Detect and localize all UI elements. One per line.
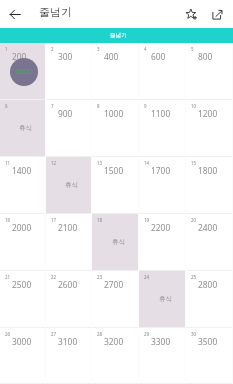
staticText: 12 <box>51 160 57 166</box>
button[interactable]: 29 <box>139 328 186 384</box>
staticText: 1400 <box>12 165 32 176</box>
button[interactable]: 28 <box>92 328 139 384</box>
staticText: 3 <box>97 46 100 52</box>
button[interactable]: 21 <box>0 271 46 328</box>
staticText: 13 <box>97 160 103 166</box>
staticText: 23 <box>97 274 103 280</box>
staticText: 28 <box>97 331 103 337</box>
staticText: 1700 <box>151 165 171 176</box>
button[interactable]: 1 <box>0 43 46 100</box>
staticText: 25 <box>191 274 197 280</box>
staticText: 3300 <box>151 336 171 347</box>
staticText: 24 <box>144 274 150 280</box>
staticText: 17 <box>51 217 57 223</box>
staticText: 5 <box>191 46 194 52</box>
staticText: 2200 <box>151 222 171 233</box>
staticText: 18 <box>97 217 103 223</box>
staticText: 9 <box>144 103 147 109</box>
button[interactable]: 10 <box>186 100 233 157</box>
button[interactable]: 14 <box>139 157 186 214</box>
button[interactable]: 4 <box>139 43 186 100</box>
staticText: 800 <box>198 51 213 62</box>
button[interactable]: 13 <box>92 157 139 214</box>
staticText: 1 <box>5 46 8 52</box>
button[interactable]: 26 <box>0 328 46 384</box>
staticText: 27 <box>51 331 57 337</box>
staticText: 21 <box>5 274 11 280</box>
button[interactable]: 25 <box>186 271 233 328</box>
staticText: 휴식 <box>159 295 173 303</box>
staticText: 20 <box>191 217 197 223</box>
staticText: 7 <box>51 103 54 109</box>
staticText: 900 <box>58 108 73 119</box>
button[interactable]: 15 <box>186 157 233 214</box>
staticText: 4 <box>144 46 147 52</box>
staticText: 3500 <box>198 336 218 347</box>
staticText: 16 <box>5 217 11 223</box>
staticText: 400 <box>104 51 119 62</box>
staticText: 15 <box>191 160 197 166</box>
button[interactable]: 6 <box>0 100 46 157</box>
staticText: 2100 <box>58 222 78 233</box>
staticText: 3200 <box>104 336 124 347</box>
staticText: 10 <box>191 103 197 109</box>
staticText: 22 <box>51 274 57 280</box>
staticText: 1000 <box>104 108 124 119</box>
staticText: 2500 <box>12 279 32 290</box>
staticText: 8 <box>97 103 100 109</box>
staticText: 2700 <box>104 279 124 290</box>
staticText: 05/22 <box>16 67 33 76</box>
button[interactable]: 11 <box>0 157 46 214</box>
button[interactable]: Add to favorites <box>178 1 204 27</box>
staticText: 휴식 <box>19 124 33 132</box>
staticText: 29 <box>144 331 150 337</box>
staticText: 휴식 <box>65 181 79 189</box>
button[interactable]: 23 <box>92 271 139 328</box>
button[interactable]: Back <box>0 0 28 28</box>
button[interactable]: 2 <box>46 43 92 100</box>
staticText: 1200 <box>198 108 218 119</box>
staticText: 1100 <box>151 108 171 119</box>
staticText: 6 <box>5 103 8 109</box>
button[interactable]: 30 <box>186 328 233 384</box>
staticText: 2000 <box>12 222 32 233</box>
button[interactable]: 5 <box>186 43 233 100</box>
staticText: 2400 <box>198 222 218 233</box>
button[interactable]: 16 <box>0 214 46 271</box>
button[interactable]: 3 <box>92 43 139 100</box>
staticText: 1800 <box>198 165 218 176</box>
staticText: 26 <box>5 331 11 337</box>
button[interactable]: 9 <box>139 100 186 157</box>
staticText: 3000 <box>12 336 32 347</box>
staticText: 19 <box>144 217 150 223</box>
button[interactable]: 22 <box>46 271 92 328</box>
staticText: 30 <box>191 331 197 337</box>
staticText: 줄넘기 <box>39 5 72 19</box>
button[interactable]: 17 <box>46 214 92 271</box>
button[interactable]: 19 <box>139 214 186 271</box>
button[interactable]: 27 <box>46 328 92 384</box>
button[interactable]: 24 <box>139 271 186 328</box>
staticText: 줄넘기 <box>110 32 127 39</box>
button[interactable]: 8 <box>92 100 139 157</box>
staticText: 2800 <box>198 279 218 290</box>
staticText: 3100 <box>58 336 78 347</box>
staticText: 300 <box>58 51 73 62</box>
button[interactable]: 18 <box>92 214 139 271</box>
staticText: 11 <box>5 160 11 166</box>
button[interactable]: 20 <box>186 214 233 271</box>
button[interactable]: 7 <box>46 100 92 157</box>
staticText: 2 <box>51 46 54 52</box>
button[interactable]: 12 <box>46 157 92 214</box>
staticText: 200 <box>12 51 27 62</box>
staticText: 2600 <box>58 279 78 290</box>
staticText: 600 <box>151 51 166 62</box>
staticText: 1500 <box>104 165 124 176</box>
button[interactable]: Share <box>204 1 230 27</box>
staticText: 휴식 <box>112 238 126 246</box>
staticText: 14 <box>144 160 150 166</box>
